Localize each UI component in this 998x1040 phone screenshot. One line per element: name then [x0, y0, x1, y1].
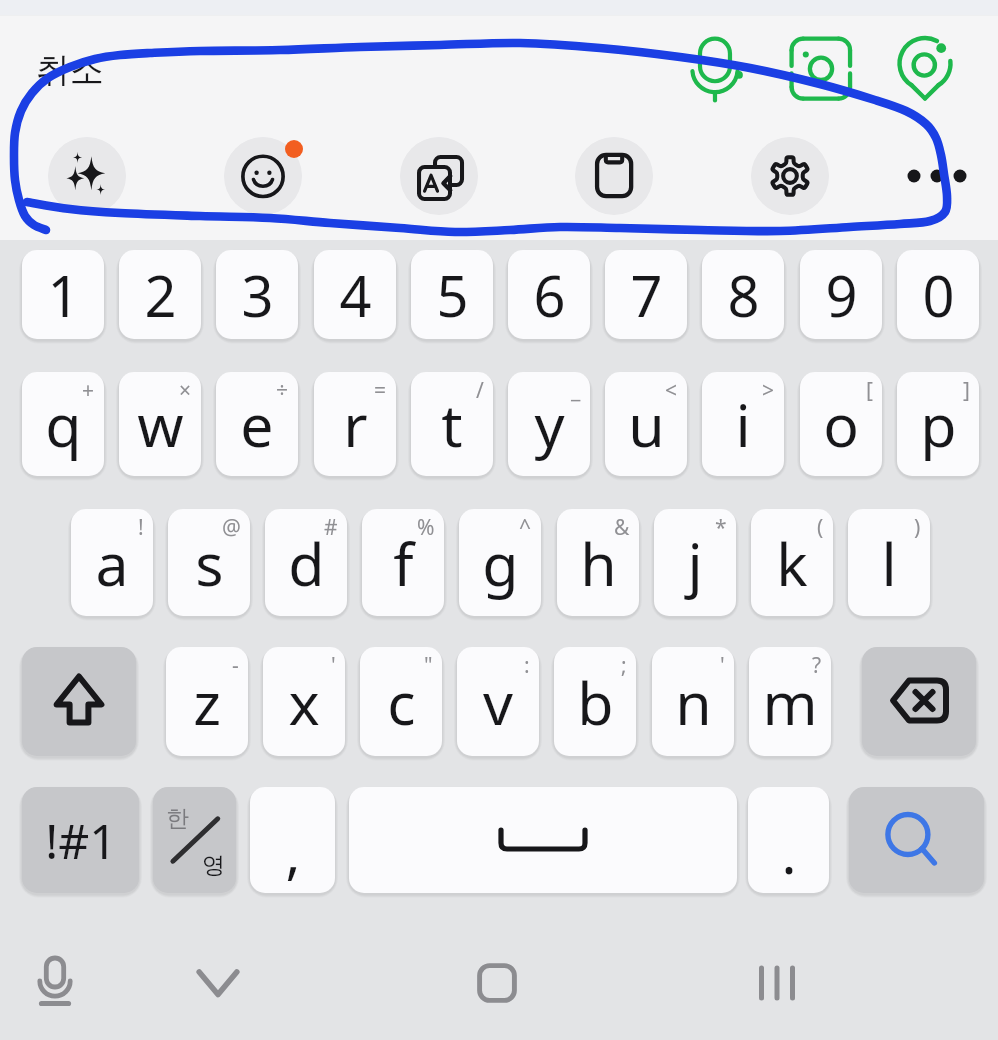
button[interactable]: 1 [22, 250, 104, 339]
staticText: , [285, 814, 301, 890]
button[interactable]: Home [453, 939, 541, 1027]
staticText: 한 [166, 804, 189, 833]
staticText: % [417, 513, 435, 542]
button[interactable]: v [457, 647, 539, 756]
button[interactable]: !#1 [22, 787, 139, 893]
staticText: h [580, 523, 617, 603]
button[interactable]: c [360, 647, 442, 756]
button[interactable]: g [459, 509, 541, 616]
button[interactable]: j [654, 509, 736, 616]
button[interactable]: u [605, 372, 687, 476]
button[interactable]: , [250, 787, 335, 893]
button[interactable]: Space [349, 787, 737, 893]
button[interactable]: h [557, 509, 639, 616]
staticText: ) [914, 513, 921, 542]
staticText: i [735, 384, 751, 464]
button[interactable]: . [748, 787, 829, 893]
button[interactable]: n [652, 647, 734, 756]
button[interactable]: Shift [22, 647, 136, 756]
button[interactable]: t [411, 372, 493, 476]
staticText: 5 [436, 257, 469, 333]
staticText: n [675, 662, 712, 742]
button[interactable]: 5 [411, 250, 493, 339]
staticText: 취소 [36, 49, 104, 92]
button[interactable]: Emoji [224, 137, 302, 215]
button[interactable]: Translate [400, 137, 478, 215]
staticText: s [195, 523, 224, 603]
button[interactable]: x [263, 647, 345, 756]
staticText: 2 [144, 257, 177, 333]
staticText: / [476, 376, 484, 405]
button[interactable]: i [702, 372, 784, 476]
staticText: r [343, 384, 368, 464]
staticText: f [393, 523, 414, 603]
button[interactable]: Voice input [675, 27, 753, 105]
staticText: ! [138, 513, 144, 542]
button[interactable]: Recent apps [733, 939, 821, 1027]
button[interactable]: Voice [11, 938, 99, 1026]
button[interactable]: 취소 [36, 44, 108, 96]
button[interactable]: 7 [605, 250, 687, 339]
staticText: b [577, 662, 614, 742]
staticText: x [288, 662, 320, 742]
staticText: g [482, 523, 519, 603]
staticText: & [614, 513, 630, 542]
button[interactable]: w [119, 372, 201, 476]
button[interactable]: a [71, 509, 153, 616]
button[interactable]: m [749, 647, 831, 756]
button[interactable]: f [362, 509, 444, 616]
staticText: ] [963, 376, 970, 405]
button[interactable]: 8 [702, 250, 784, 339]
staticText: " [424, 651, 433, 680]
button[interactable]: q [22, 372, 104, 476]
staticText: * [715, 513, 727, 542]
button[interactable]: Backspace [862, 647, 976, 756]
staticText: t [441, 384, 463, 464]
staticText: 7 [630, 257, 663, 333]
button[interactable]: Writing assist [48, 137, 126, 215]
button[interactable]: e [216, 372, 298, 476]
staticText: 3 [241, 257, 274, 333]
button[interactable]: b [554, 647, 636, 756]
button[interactable]: 0 [897, 250, 979, 339]
button[interactable]: Hide keyboard [174, 939, 262, 1027]
staticText: # [324, 513, 338, 542]
staticText: 9 [825, 257, 858, 333]
button[interactable]: Search nearby [886, 26, 964, 104]
staticText: q [45, 384, 82, 464]
staticText: ' [720, 651, 725, 680]
button[interactable]: More options [898, 137, 976, 215]
button[interactable]: Search [849, 787, 984, 893]
staticText: 1 [47, 257, 80, 333]
button[interactable]: 6 [508, 250, 590, 339]
staticText: j [687, 523, 703, 603]
button[interactable]: 3 [216, 250, 298, 339]
staticText: ? [812, 651, 822, 680]
staticText: z [193, 662, 221, 742]
button[interactable]: s [168, 509, 250, 616]
button[interactable]: 9 [800, 250, 882, 339]
button[interactable]: Clipboard [575, 137, 653, 215]
button[interactable]: Scan text [782, 28, 860, 106]
button[interactable]: Settings [751, 137, 829, 215]
button[interactable]: Korean / English [153, 787, 236, 893]
button[interactable]: 4 [314, 250, 396, 339]
staticText: a [95, 523, 129, 603]
button[interactable]: l [848, 509, 930, 616]
button[interactable]: d [265, 509, 347, 616]
button[interactable]: z [166, 647, 248, 756]
staticText: y [534, 384, 565, 464]
staticText: ' [331, 651, 336, 680]
staticText: w [137, 384, 184, 464]
button[interactable]: r [314, 372, 396, 476]
staticText: < [665, 376, 678, 405]
button[interactable]: y [508, 372, 590, 476]
button[interactable]: p [897, 372, 979, 476]
staticText: 8 [727, 257, 760, 333]
button[interactable]: o [800, 372, 882, 476]
staticText: e [240, 384, 274, 464]
button[interactable]: 2 [119, 250, 201, 339]
staticText: [ [866, 376, 873, 405]
staticText: = [374, 376, 387, 405]
button[interactable]: k [751, 509, 833, 616]
